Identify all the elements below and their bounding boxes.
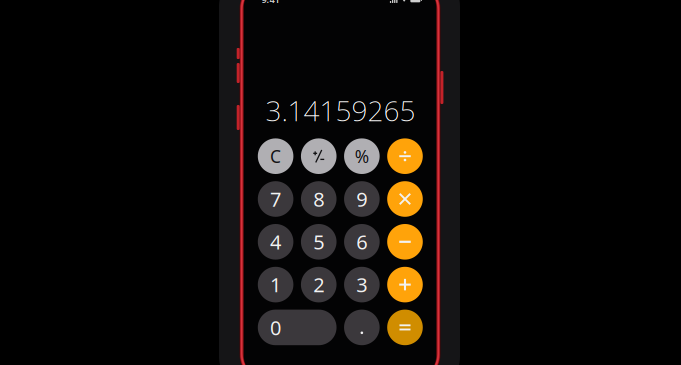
button[interactable]: Multiply bbox=[387, 181, 423, 217]
button[interactable]: 0 bbox=[258, 310, 336, 345]
button[interactable]: Divide bbox=[387, 138, 423, 174]
button[interactable]: Clear bbox=[258, 138, 293, 174]
button[interactable]: 6 bbox=[344, 224, 380, 260]
button[interactable]: Plus minus bbox=[301, 138, 336, 174]
button[interactable]: Plus bbox=[387, 267, 423, 302]
staticText: 0 bbox=[270, 314, 281, 341]
button[interactable]: 8 bbox=[301, 181, 336, 217]
staticText: 3.14159265 bbox=[265, 92, 415, 129]
button[interactable]: 2 bbox=[301, 267, 336, 302]
button[interactable]: Percent bbox=[344, 138, 380, 174]
staticText: 3 bbox=[356, 271, 367, 298]
button[interactable]: Equals bbox=[387, 310, 423, 345]
button[interactable]: 5 bbox=[301, 224, 336, 260]
button[interactable]: 9 bbox=[344, 181, 380, 217]
staticText: 9 bbox=[356, 186, 367, 212]
staticText: C bbox=[270, 145, 281, 168]
staticText: 4 bbox=[270, 228, 281, 255]
button[interactable]: Decimal point bbox=[344, 310, 380, 345]
staticText: 8 bbox=[313, 186, 324, 212]
button[interactable]: 4 bbox=[258, 224, 293, 260]
button[interactable]: 1 bbox=[258, 267, 293, 302]
staticText: 2 bbox=[313, 271, 324, 298]
staticText: 5 bbox=[313, 228, 324, 255]
staticText: 7 bbox=[270, 186, 281, 212]
staticText: 1 bbox=[270, 271, 281, 298]
button[interactable]: 7 bbox=[258, 181, 293, 217]
staticText: 9:41 bbox=[261, 0, 279, 6]
button[interactable]: 3 bbox=[344, 267, 380, 302]
staticText: 6 bbox=[356, 228, 367, 255]
button[interactable]: Minus bbox=[387, 224, 423, 260]
staticText: % bbox=[355, 145, 369, 168]
